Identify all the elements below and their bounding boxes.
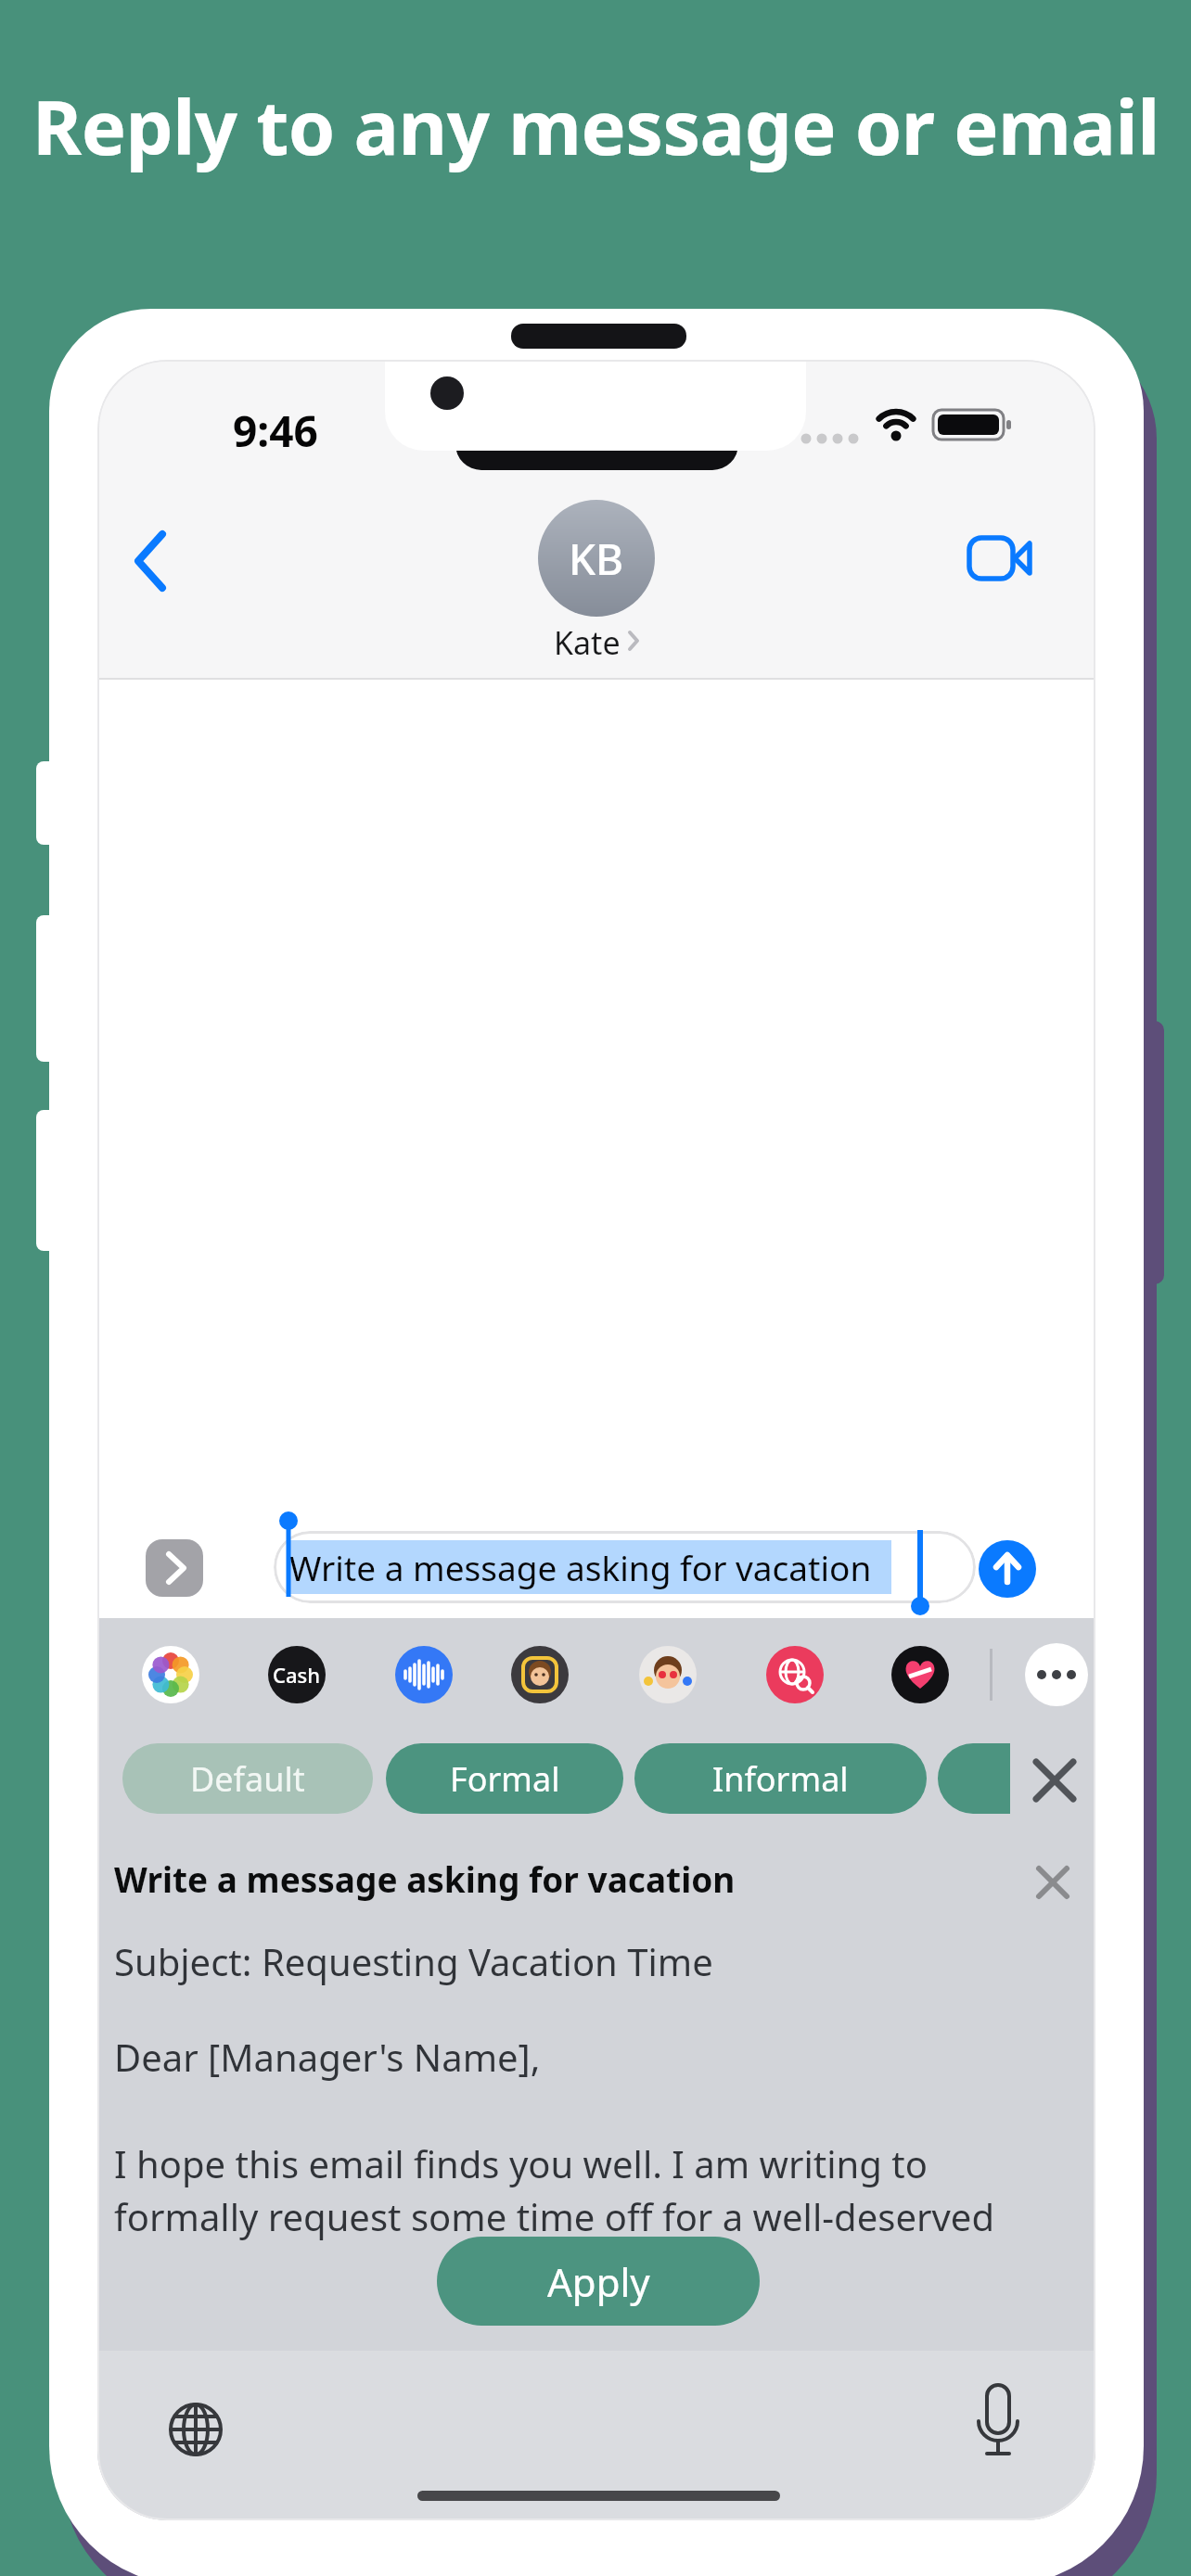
- button[interactable]: Apply: [437, 2237, 760, 2326]
- button[interactable]: [1029, 1754, 1081, 1806]
- staticText: Apply: [547, 2255, 650, 2308]
- staticText: Informal: [712, 1756, 849, 1802]
- button[interactable]: [1025, 1643, 1088, 1706]
- staticText: Subject: Requesting Vacation Time: [114, 1936, 713, 1986]
- staticText: KB: [569, 529, 624, 588]
- button[interactable]: [938, 1743, 1010, 1814]
- staticText: Dear [Manager's Name],: [114, 2032, 541, 2082]
- staticText: Kate: [554, 621, 621, 660]
- button[interactable]: [125, 527, 177, 595]
- staticText: Write a message asking for vacation: [114, 1855, 736, 1902]
- button[interactable]: [891, 1646, 949, 1703]
- button[interactable]: Formal: [386, 1743, 623, 1814]
- button[interactable]: [966, 532, 1036, 588]
- staticText: Default: [190, 1756, 305, 1802]
- staticText: Write a message asking for vacation: [289, 1544, 872, 1590]
- staticText: Formal: [450, 1756, 560, 1802]
- button[interactable]: [142, 1646, 199, 1703]
- button[interactable]: [979, 1540, 1036, 1598]
- staticText: Cash: [273, 1661, 321, 1689]
- staticText: Reply to any message or email: [32, 74, 1159, 176]
- staticText: I hope this email finds you well. I am w…: [114, 2138, 928, 2188]
- button[interactable]: Cash: [268, 1646, 326, 1703]
- button[interactable]: [395, 1646, 453, 1703]
- button[interactable]: [1032, 1862, 1073, 1903]
- button[interactable]: [965, 2381, 1031, 2463]
- button[interactable]: [639, 1646, 697, 1703]
- button[interactable]: [162, 2396, 229, 2463]
- button[interactable]: Default: [122, 1743, 373, 1814]
- button[interactable]: Write a message asking for vacation: [274, 1531, 976, 1603]
- button[interactable]: [146, 1539, 203, 1597]
- staticText: formally request some time off for a wel…: [114, 2191, 994, 2241]
- button[interactable]: Informal: [634, 1743, 927, 1814]
- staticText: 9:46: [233, 402, 318, 460]
- button[interactable]: KB: [538, 500, 655, 617]
- button[interactable]: [766, 1646, 824, 1703]
- button[interactable]: [511, 1646, 569, 1703]
